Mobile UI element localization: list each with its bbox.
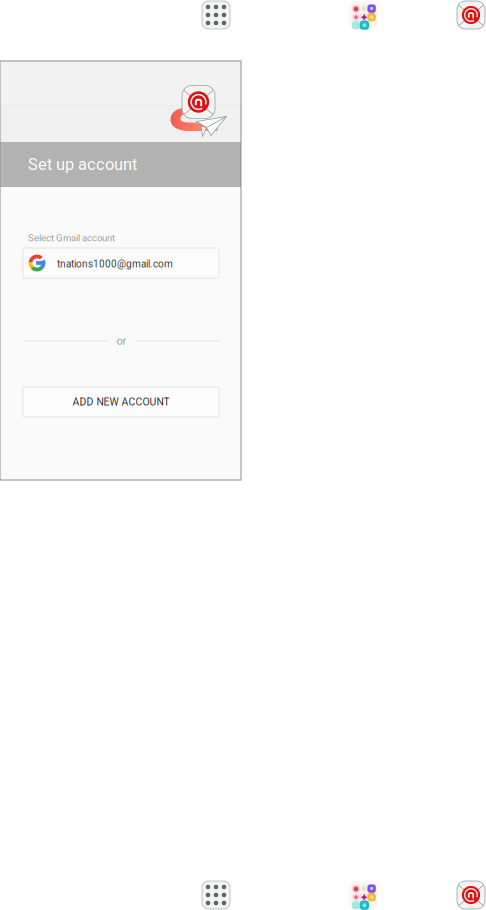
button[interactable]: All apps: [202, 881, 230, 909]
staticText: ADD NEW ACCOUNT: [72, 396, 169, 408]
staticText: Set up account: [28, 155, 137, 174]
button[interactable]: ADD NEW ACCOUNT: [23, 387, 219, 417]
staticText: tnations1000@gmail.com: [57, 258, 173, 270]
staticText: or: [116, 334, 126, 347]
button[interactable]: All apps: [202, 1, 230, 29]
button[interactable]: Apps folder: [349, 1, 377, 29]
button[interactable]: Apps folder: [349, 881, 377, 909]
staticText: Select Gmail account: [28, 232, 115, 244]
button[interactable]: tnations1000@gmail.com: [23, 248, 219, 278]
button[interactable]: Email app: [457, 881, 485, 909]
button[interactable]: Email app: [457, 1, 485, 29]
